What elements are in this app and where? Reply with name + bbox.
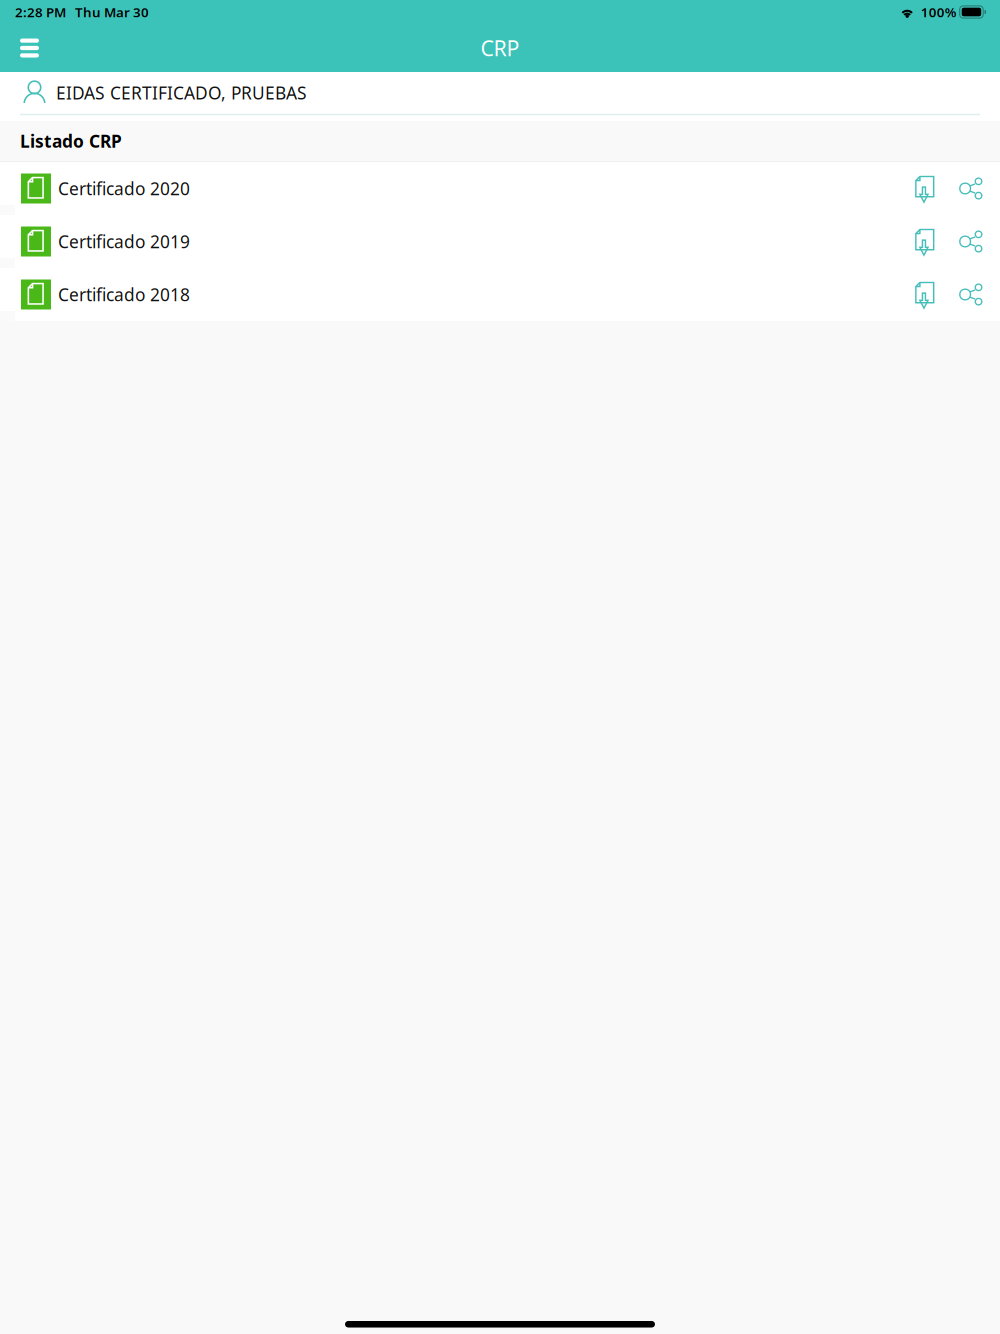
- button[interactable]: Share Certificado 2019: [951, 219, 991, 263]
- button[interactable]: Share Certificado 2018: [951, 272, 991, 316]
- button[interactable]: Download Certificado 2020: [905, 166, 945, 210]
- staticText: Certificado 2019: [58, 230, 190, 253]
- button[interactable]: Certificado 2019: [0, 215, 1000, 268]
- button[interactable]: Download Certificado 2019: [905, 219, 945, 263]
- staticText: Listado CRP: [20, 129, 122, 152]
- staticText: Thu Mar 30: [75, 3, 149, 21]
- button[interactable]: Menu: [0, 24, 56, 72]
- staticText: CRP: [480, 34, 519, 62]
- staticText: 2:28 PM: [15, 3, 66, 21]
- button[interactable]: EIDAS CERTIFICADO, PRUEBAS: [0, 72, 1000, 121]
- button[interactable]: Certificado 2018: [0, 268, 1000, 321]
- staticText: Certificado 2018: [58, 283, 190, 306]
- button[interactable]: Share Certificado 2020: [951, 166, 991, 210]
- button[interactable]: Download Certificado 2018: [905, 272, 945, 316]
- staticText: 100%: [921, 3, 957, 21]
- staticText: EIDAS CERTIFICADO, PRUEBAS: [56, 81, 307, 104]
- button[interactable]: Certificado 2020: [0, 162, 1000, 215]
- staticText: Certificado 2020: [58, 177, 190, 200]
